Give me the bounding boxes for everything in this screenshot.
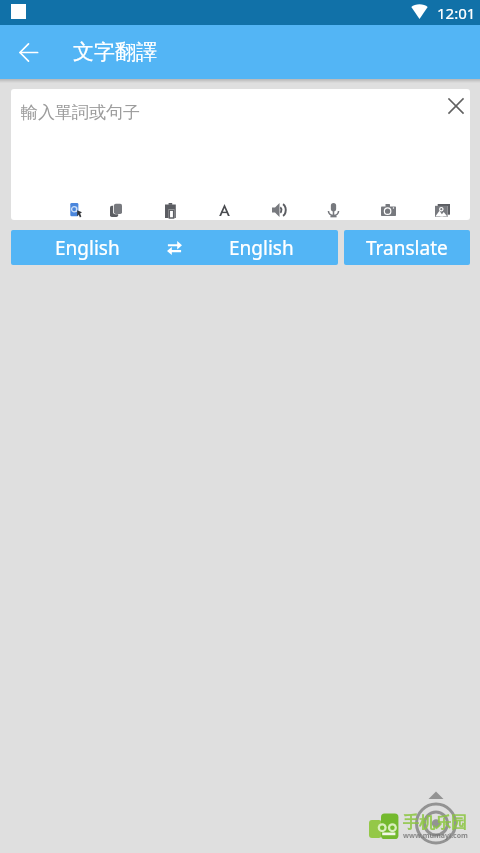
button[interactable]: Swap languages <box>163 230 185 265</box>
button[interactable]: Voice input <box>316 193 350 227</box>
staticText: 手机乐园 <box>403 813 467 833</box>
staticText: English <box>55 235 120 261</box>
staticText: English <box>229 235 294 261</box>
button[interactable]: Text size <box>207 193 241 227</box>
staticText: 文字翻譯 <box>73 39 157 65</box>
button[interactable]: Gallery <box>425 193 459 227</box>
staticText: Translate <box>366 235 448 261</box>
button[interactable]: 輸入單詞或句子 <box>11 89 470 179</box>
staticText: 12:01 <box>437 3 476 23</box>
staticText: 輸入單詞或句子 <box>21 102 140 123</box>
button[interactable]: Copy <box>99 193 133 227</box>
button[interactable]: Translate <box>344 230 470 265</box>
button[interactable]: Camera <box>371 193 405 227</box>
button[interactable]: Clear text <box>439 89 470 123</box>
button[interactable]: English <box>185 230 338 265</box>
staticText: www.mumayi.com <box>403 831 468 841</box>
button[interactable]: Listen <box>262 193 296 227</box>
button[interactable]: Back <box>8 32 48 72</box>
button[interactable]: Paste <box>154 193 188 227</box>
button[interactable]: Translate mode <box>58 193 92 227</box>
button[interactable]: English <box>11 230 163 265</box>
